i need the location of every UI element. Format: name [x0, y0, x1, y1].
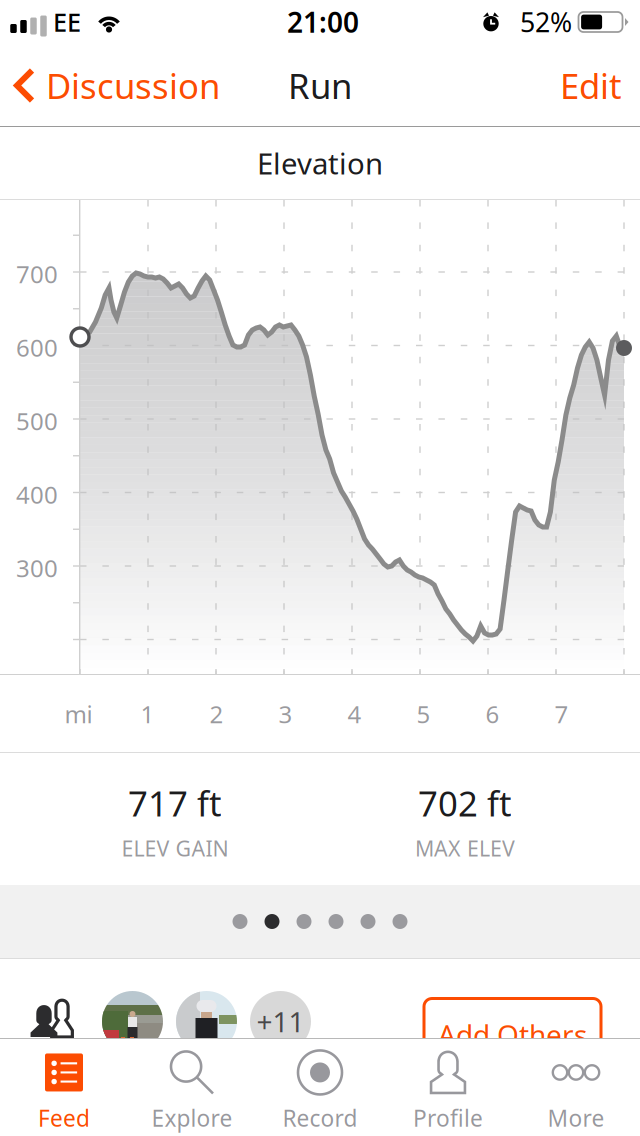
staticText: 6: [485, 698, 499, 730]
staticText: 3: [278, 698, 292, 730]
staticText: 1: [140, 698, 154, 730]
staticText: 4: [347, 698, 361, 730]
staticText: Edit: [560, 62, 622, 108]
button[interactable]: Record: [256, 1038, 384, 1136]
button[interactable]: Profile: [384, 1038, 512, 1136]
staticText: 2: [209, 698, 223, 730]
staticText: 5: [416, 698, 430, 730]
staticText: 400: [16, 479, 58, 510]
button[interactable]: Add Others: [424, 998, 601, 1070]
staticText: 717 ft: [128, 780, 222, 826]
staticText: +11: [256, 1003, 304, 1040]
staticText: Record: [282, 1103, 357, 1133]
staticText: Profile: [413, 1103, 483, 1133]
staticText: Feed: [38, 1103, 90, 1133]
staticText: 702 ft: [418, 780, 512, 826]
staticText: mi: [64, 698, 92, 730]
staticText: More: [547, 1103, 604, 1133]
staticText: 7: [554, 698, 568, 730]
button[interactable]: Explore: [128, 1038, 256, 1136]
staticText: Run: [288, 62, 352, 108]
button[interactable]: More: [512, 1038, 640, 1136]
staticText: Elevation: [257, 143, 383, 182]
button[interactable]: Discussion: [0, 44, 232, 127]
staticText: ELEV GAIN: [121, 834, 228, 862]
staticText: 500: [16, 405, 58, 437]
staticText: 52%: [520, 4, 572, 40]
staticText: MAX ELEV: [415, 834, 515, 862]
staticText: Explore: [151, 1103, 232, 1133]
staticText: Discussion: [46, 62, 220, 108]
button[interactable]: Feed: [0, 1038, 128, 1136]
staticText: 300: [16, 552, 58, 584]
staticText: 21:00: [287, 3, 359, 41]
button[interactable]: Edit: [542, 44, 640, 127]
staticText: 600: [16, 332, 58, 363]
staticText: EE: [53, 5, 81, 39]
staticText: 700: [16, 258, 58, 290]
staticText: Add Others: [438, 1016, 587, 1053]
